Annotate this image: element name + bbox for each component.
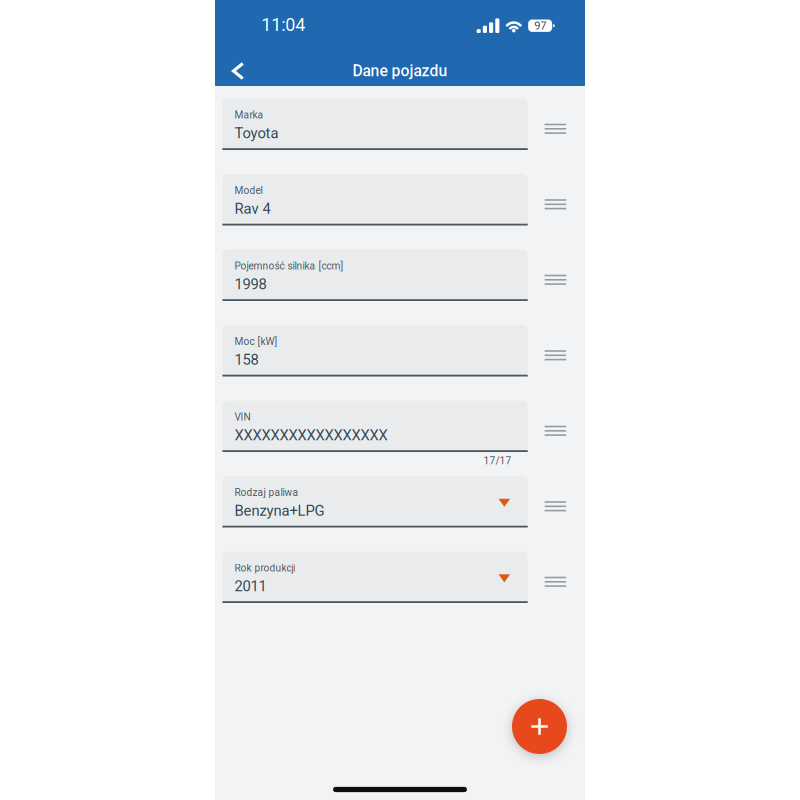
button[interactable]: Marka	[222, 98, 528, 150]
button[interactable]: Reorder	[540, 343, 570, 367]
staticText: Rodzaj paliwa	[234, 487, 298, 498]
staticText: Model	[234, 185, 262, 196]
staticText: XXXXXXXXXXXXXXXXX	[234, 426, 387, 444]
staticText: Dane pojazdu	[352, 62, 447, 80]
button[interactable]: Add	[512, 699, 567, 754]
button[interactable]: Reorder	[540, 419, 570, 443]
staticText: 17/17	[484, 455, 512, 467]
staticText: Rok produkcji	[234, 562, 295, 574]
button[interactable]: Back	[232, 62, 244, 80]
button[interactable]: Reorder	[540, 570, 570, 594]
staticText: Toyota	[234, 124, 278, 142]
staticText: Benzyna+LPG	[234, 502, 324, 519]
staticText: 158	[234, 351, 258, 368]
staticText: 2011	[234, 577, 266, 595]
button[interactable]: Moc [kW]	[222, 325, 528, 376]
button[interactable]: Rok produkcji	[222, 551, 528, 603]
staticText: Moc [kW]	[234, 336, 277, 347]
button[interactable]: Reorder	[540, 192, 570, 216]
staticText: Pojemność silnika [ccm]	[234, 260, 343, 272]
button[interactable]: Reorder	[540, 117, 570, 141]
staticText: 97	[534, 19, 546, 32]
button[interactable]: VIN	[222, 400, 528, 452]
button[interactable]: Model	[222, 174, 528, 225]
button[interactable]: Rodzaj paliwa	[222, 476, 528, 527]
staticText: 1998	[234, 275, 266, 293]
staticText: 11:04	[261, 14, 305, 35]
staticText: VIN	[234, 411, 250, 423]
staticText: Rav 4	[234, 200, 270, 217]
button[interactable]: Pojemność silnika [ccm]	[222, 249, 528, 301]
button[interactable]: Reorder	[540, 494, 570, 518]
button[interactable]: Reorder	[540, 268, 570, 292]
staticText: Marka	[234, 109, 263, 121]
